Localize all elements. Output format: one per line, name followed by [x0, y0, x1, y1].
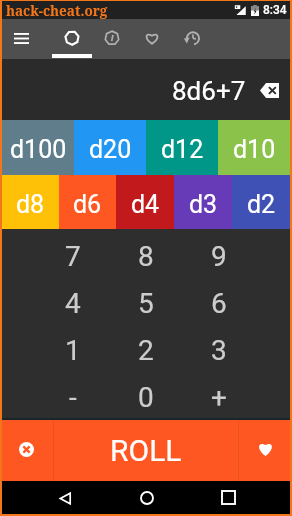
- button[interactable]: 8: [109, 229, 182, 277]
- staticText: 8: [138, 240, 154, 273]
- button[interactable]: Add to favourites: [238, 420, 290, 481]
- staticText: d6: [73, 190, 102, 219]
- button[interactable]: Dice: [52, 19, 92, 59]
- staticText: ROLL: [110, 433, 182, 468]
- button[interactable]: Favourites: [132, 19, 172, 59]
- staticText: 0: [138, 381, 154, 414]
- button[interactable]: 1: [37, 324, 109, 371]
- button[interactable]: d100: [2, 120, 74, 175]
- button[interactable]: ROLL: [54, 420, 238, 481]
- staticText: 7: [65, 240, 81, 273]
- button[interactable]: d6: [59, 175, 116, 229]
- button[interactable]: History: [172, 19, 212, 59]
- button[interactable]: d20: [74, 120, 146, 175]
- button[interactable]: 9: [182, 229, 255, 277]
- staticText: 2: [138, 334, 154, 367]
- button[interactable]: 7: [37, 229, 109, 277]
- staticText: 5: [138, 287, 154, 320]
- button[interactable]: d8: [2, 175, 59, 229]
- staticText: -: [69, 381, 77, 414]
- staticText: hack-cheat.org: [6, 2, 108, 20]
- button[interactable]: d12: [146, 120, 218, 175]
- button[interactable]: Navigation menu: [0, 18, 42, 58]
- staticText: +: [211, 381, 227, 414]
- button[interactable]: Home: [126, 481, 167, 514]
- staticText: d10: [233, 135, 276, 164]
- button[interactable]: 2: [109, 324, 182, 371]
- staticText: d2: [247, 190, 276, 219]
- staticText: 8:34: [263, 3, 287, 17]
- staticText: 9: [211, 240, 227, 273]
- button[interactable]: 6: [182, 277, 255, 324]
- staticText: 1: [65, 334, 81, 367]
- button[interactable]: 0: [109, 371, 182, 418]
- button[interactable]: d3: [174, 175, 232, 229]
- button[interactable]: +: [182, 371, 255, 418]
- button[interactable]: 3: [182, 324, 255, 371]
- staticText: d12: [161, 135, 204, 164]
- staticText: 6: [211, 287, 227, 320]
- staticText: d20: [89, 135, 132, 164]
- staticText: d8: [16, 190, 45, 219]
- staticText: 3: [211, 334, 227, 367]
- button[interactable]: d4: [116, 175, 174, 229]
- staticText: d3: [189, 190, 218, 219]
- staticText: d100: [10, 135, 67, 164]
- button[interactable]: Custom die: [92, 19, 132, 59]
- button[interactable]: -: [37, 371, 109, 418]
- button[interactable]: Backspace: [251, 68, 287, 112]
- button[interactable]: 4: [37, 277, 109, 324]
- staticText: 8d6+7: [172, 76, 246, 106]
- staticText: d4: [131, 190, 160, 219]
- staticText: 4: [65, 287, 81, 320]
- button[interactable]: Back: [45, 481, 86, 514]
- button[interactable]: 5: [109, 277, 182, 324]
- button[interactable]: d2: [232, 175, 290, 229]
- button[interactable]: Clear expression: [2, 420, 54, 481]
- button[interactable]: d10: [218, 120, 290, 175]
- button[interactable]: Recent apps: [208, 481, 249, 514]
